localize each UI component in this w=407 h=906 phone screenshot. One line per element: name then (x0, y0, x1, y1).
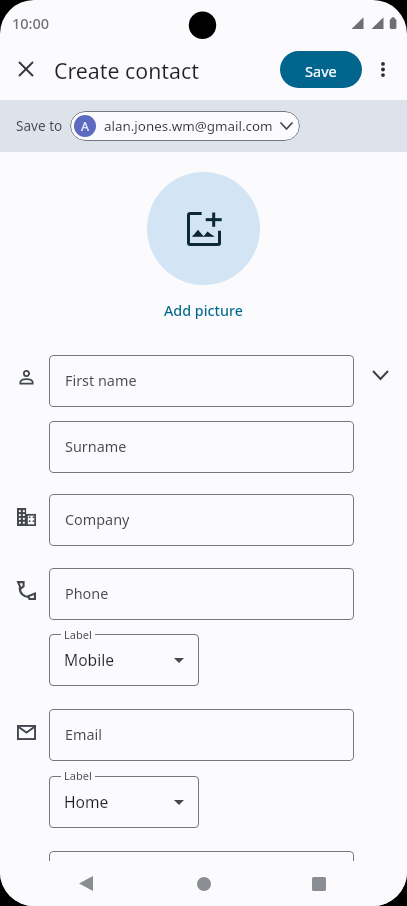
button[interactable]: Mobile (49, 634, 199, 686)
button[interactable]: Save (280, 51, 362, 88)
staticText: Label (64, 768, 92, 783)
staticText: Email (65, 725, 102, 745)
staticText: Home (64, 791, 109, 812)
button[interactable]: Phone (49, 568, 354, 620)
button[interactable]: Email (49, 709, 354, 761)
staticText: Mobile (64, 649, 115, 670)
staticText: Create contact (54, 56, 199, 85)
button[interactable]: More name fields (354, 349, 407, 401)
button[interactable]: Home (180, 861, 228, 906)
button[interactable]: First name (49, 355, 354, 407)
staticText: Company (65, 510, 130, 530)
staticText: 10:00 (12, 13, 50, 33)
button[interactable]: Add picture (164, 301, 243, 320)
staticText: Surname (65, 437, 127, 457)
button[interactable]: Home (49, 776, 199, 828)
staticText: A (81, 118, 89, 135)
staticText: Save to (16, 116, 63, 135)
button[interactable]: Back (62, 861, 110, 906)
staticText: Label (64, 627, 92, 642)
button[interactable]: More options (361, 47, 405, 91)
button[interactable]: Surname (49, 421, 354, 473)
staticText: alan.jones.wm@gmail.com (104, 117, 273, 135)
button[interactable]: Add picture (147, 172, 260, 285)
staticText: First name (65, 371, 137, 391)
staticText: Phone (65, 584, 109, 604)
button[interactable]: Company (49, 494, 354, 546)
button[interactable]: Recent apps (295, 861, 343, 906)
button[interactable] (49, 851, 354, 903)
button[interactable]: A (70, 111, 300, 141)
staticText: Save (305, 61, 337, 81)
button[interactable]: Close (4, 47, 48, 91)
